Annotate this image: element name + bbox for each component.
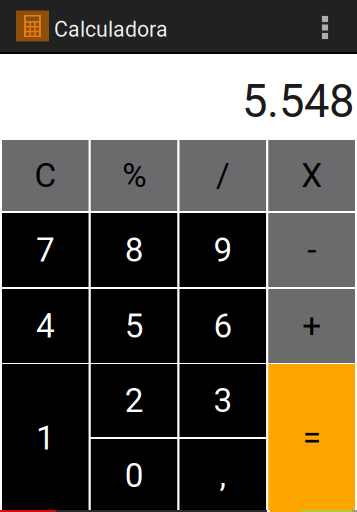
- button[interactable]: /: [179, 140, 266, 211]
- button[interactable]: %: [91, 140, 178, 211]
- staticText: 7: [36, 230, 55, 270]
- button[interactable]: 1: [2, 364, 89, 512]
- button[interactable]: 6: [179, 289, 266, 363]
- button[interactable]: 2: [91, 364, 178, 437]
- staticText: 5: [125, 306, 144, 346]
- staticText: +: [302, 306, 321, 346]
- staticText: 9: [213, 230, 232, 270]
- staticText: 2: [125, 381, 144, 420]
- button[interactable]: More options: [293, 0, 357, 52]
- button[interactable]: X: [268, 140, 355, 211]
- button[interactable]: 7: [2, 213, 89, 287]
- staticText: 8: [125, 230, 144, 270]
- staticText: /: [216, 156, 230, 195]
- button[interactable]: 0: [91, 439, 178, 512]
- staticText: 4: [36, 306, 55, 346]
- staticText: C: [34, 156, 56, 195]
- button[interactable]: +: [268, 289, 355, 363]
- button[interactable]: 4: [2, 289, 89, 363]
- staticText: Calculadora: [54, 17, 168, 42]
- staticText: 1: [36, 418, 55, 458]
- button[interactable]: -: [268, 213, 355, 287]
- staticText: %: [122, 156, 146, 195]
- staticText: =: [303, 418, 321, 458]
- button[interactable]: 8: [91, 213, 178, 287]
- button[interactable]: 9: [179, 213, 266, 287]
- button[interactable]: 3: [179, 364, 266, 437]
- staticText: X: [301, 156, 322, 195]
- button[interactable]: =: [268, 364, 355, 512]
- staticText: 6: [213, 306, 232, 346]
- staticText: ,: [219, 456, 226, 495]
- staticText: 5.548: [242, 75, 354, 128]
- staticText: 3: [213, 381, 232, 420]
- staticText: -: [307, 230, 316, 270]
- button[interactable]: ,: [179, 439, 266, 512]
- button[interactable]: 5: [91, 289, 178, 363]
- staticText: 0: [125, 456, 144, 495]
- button[interactable]: C: [2, 140, 89, 211]
